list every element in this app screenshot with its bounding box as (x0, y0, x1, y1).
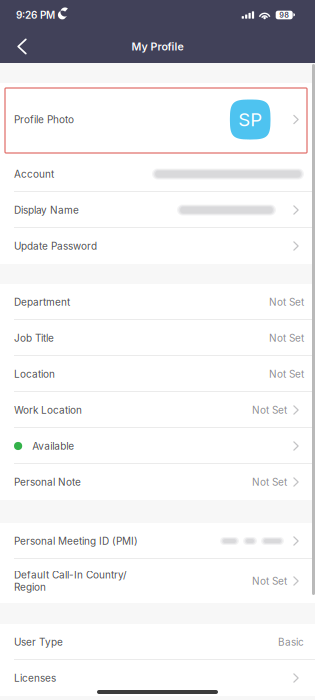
button[interactable]: User Type (0, 624, 315, 660)
staticText: Personal Meeting ID (PMI) (14, 535, 138, 547)
button[interactable]: Profile Photo (0, 83, 315, 156)
staticText: SP (238, 108, 262, 131)
button[interactable]: Personal Note (0, 464, 315, 500)
staticText: Profile Photo (14, 113, 74, 126)
button[interactable]: Account (0, 156, 315, 192)
staticText: 98 (279, 11, 289, 19)
staticText: Not Set (252, 476, 287, 488)
button[interactable]: Department (0, 284, 315, 320)
staticText: User Type (14, 636, 63, 648)
staticText: Available (32, 440, 74, 452)
button[interactable]: Licenses (0, 660, 315, 696)
staticText: Default Call-In Country/ Region (14, 569, 127, 593)
button[interactable]: Job Title (0, 320, 315, 356)
staticText: Personal Note (14, 476, 81, 488)
staticText: Basic (278, 636, 304, 648)
staticText: Update Password (14, 240, 97, 252)
button[interactable]: Back (0, 30, 44, 63)
staticText: Licenses (14, 672, 56, 684)
button[interactable]: Location (0, 356, 315, 392)
staticText: Not Set (269, 296, 304, 308)
button[interactable]: Default Call-In Country/ Region (0, 559, 315, 603)
staticText: Job Title (14, 332, 54, 344)
staticText: Not Set (252, 575, 287, 587)
button[interactable]: Available (0, 428, 315, 464)
staticText: Department (14, 296, 70, 308)
staticText: Not Set (252, 404, 287, 416)
staticText: Not Set (269, 332, 304, 344)
staticText: Not Set (269, 368, 304, 380)
staticText: My Profile (131, 40, 183, 53)
button[interactable]: Update Password (0, 228, 315, 264)
staticText: Location (14, 368, 55, 380)
button[interactable]: Personal Meeting ID (PMI) (0, 523, 315, 559)
button[interactable]: Work Location (0, 392, 315, 428)
staticText: Account (14, 168, 54, 180)
button[interactable]: Display Name (0, 192, 315, 228)
staticText: Display Name (14, 204, 79, 216)
staticText: 9:26 PM (16, 9, 55, 21)
staticText: Work Location (14, 404, 82, 416)
